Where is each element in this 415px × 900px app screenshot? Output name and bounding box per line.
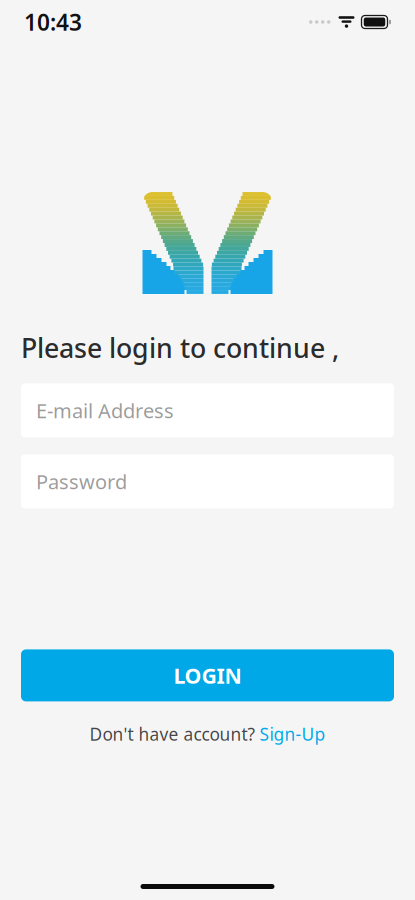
staticText: Please login to continue , [21, 330, 339, 365]
staticText: LOGIN [173, 661, 241, 689]
staticText: E-mail Address [36, 397, 174, 424]
button[interactable]: Don't have account? [81, 717, 333, 750]
staticText: Password [36, 468, 127, 495]
staticText: Don't have account? [89, 722, 255, 745]
button[interactable]: Password [21, 454, 394, 508]
button[interactable]: E-mail Address [21, 383, 394, 437]
staticText: 10:43 [24, 7, 82, 37]
staticText: Sign-Up [259, 722, 325, 745]
button[interactable]: LOGIN [21, 649, 394, 701]
